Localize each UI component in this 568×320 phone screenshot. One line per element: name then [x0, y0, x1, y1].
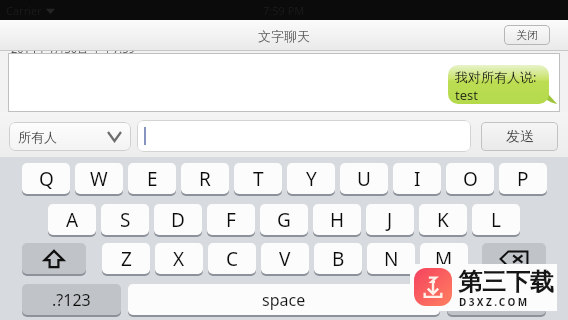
- staticText: 第三下载: [458, 267, 554, 297]
- button[interactable]: space: [128, 284, 440, 317]
- button[interactable]: M: [420, 243, 468, 276]
- staticText: M: [435, 246, 453, 272]
- staticText: 2014年4月30日 下午7:59: [11, 41, 135, 56]
- staticText: F: [226, 207, 236, 233]
- staticText: 所有人: [18, 129, 57, 145]
- button[interactable]: H: [313, 204, 361, 237]
- staticText: U: [357, 166, 371, 192]
- staticText: Y: [306, 166, 317, 192]
- button[interactable]: P: [499, 163, 547, 196]
- button[interactable]: R: [181, 163, 229, 196]
- staticText: space: [262, 289, 306, 311]
- button[interactable]: 关闭: [504, 25, 550, 45]
- staticText: B: [332, 246, 345, 272]
- staticText: D: [171, 207, 185, 233]
- button[interactable]: Q: [22, 163, 70, 196]
- button[interactable]: 我对所有人说:: [448, 65, 549, 104]
- button[interactable]: A: [48, 204, 96, 237]
- staticText: G: [277, 207, 291, 233]
- button[interactable]: C: [208, 243, 256, 276]
- staticText: W: [90, 166, 108, 192]
- button[interactable]: Shift: [22, 243, 86, 276]
- staticText: K: [437, 207, 449, 233]
- button[interactable]: Backspace: [482, 243, 546, 276]
- staticText: C: [226, 246, 239, 272]
- button[interactable]: I: [393, 163, 441, 196]
- staticText: 关闭: [516, 28, 538, 42]
- button[interactable]: O: [446, 163, 494, 196]
- button[interactable]: D: [154, 204, 202, 237]
- staticText: D3XZ.COM: [459, 295, 530, 309]
- button[interactable]: E: [128, 163, 176, 196]
- button[interactable]: 所有人: [9, 122, 131, 151]
- staticText: .?123: [52, 289, 91, 311]
- button[interactable]: Y: [287, 163, 335, 196]
- staticText: O: [463, 166, 478, 192]
- staticText: 我对所有人说:: [455, 68, 537, 86]
- button[interactable]: T: [234, 163, 282, 196]
- staticText: J: [387, 207, 393, 233]
- button[interactable]: .?123: [22, 284, 121, 317]
- staticText: P: [517, 166, 529, 192]
- button[interactable]: W: [75, 163, 123, 196]
- staticText: N: [384, 246, 399, 272]
- button[interactable]: X: [155, 243, 203, 276]
- staticText: 发送: [506, 128, 534, 146]
- button[interactable]: Return: [447, 284, 546, 317]
- staticText: T: [253, 166, 264, 192]
- staticText: test: [455, 86, 478, 104]
- staticText: I: [414, 166, 421, 192]
- button[interactable]: K: [419, 204, 467, 237]
- staticText: R: [199, 166, 211, 192]
- staticText: Carrier: [6, 3, 42, 18]
- button[interactable]: U: [340, 163, 388, 196]
- button[interactable]: J: [366, 204, 414, 237]
- staticText: A: [66, 207, 79, 233]
- staticText: Z: [121, 246, 132, 272]
- button[interactable]: N: [367, 243, 415, 276]
- staticText: L: [491, 207, 501, 233]
- button[interactable]: F: [207, 204, 255, 237]
- staticText: E: [147, 166, 158, 192]
- staticText: X: [173, 246, 185, 272]
- button[interactable]: S: [101, 204, 149, 237]
- staticText: H: [330, 207, 345, 233]
- button[interactable]: [137, 120, 471, 152]
- staticText: Q: [39, 166, 54, 192]
- button[interactable]: B: [314, 243, 362, 276]
- button[interactable]: G: [260, 204, 308, 237]
- button[interactable]: 发送: [481, 122, 558, 151]
- staticText: V: [279, 246, 291, 272]
- staticText: 文字聊天: [258, 28, 310, 44]
- button[interactable]: Z: [102, 243, 150, 276]
- staticText: 7:59 PM: [263, 3, 305, 18]
- button[interactable]: L: [472, 204, 520, 237]
- button[interactable]: V: [261, 243, 309, 276]
- staticText: S: [120, 207, 131, 233]
